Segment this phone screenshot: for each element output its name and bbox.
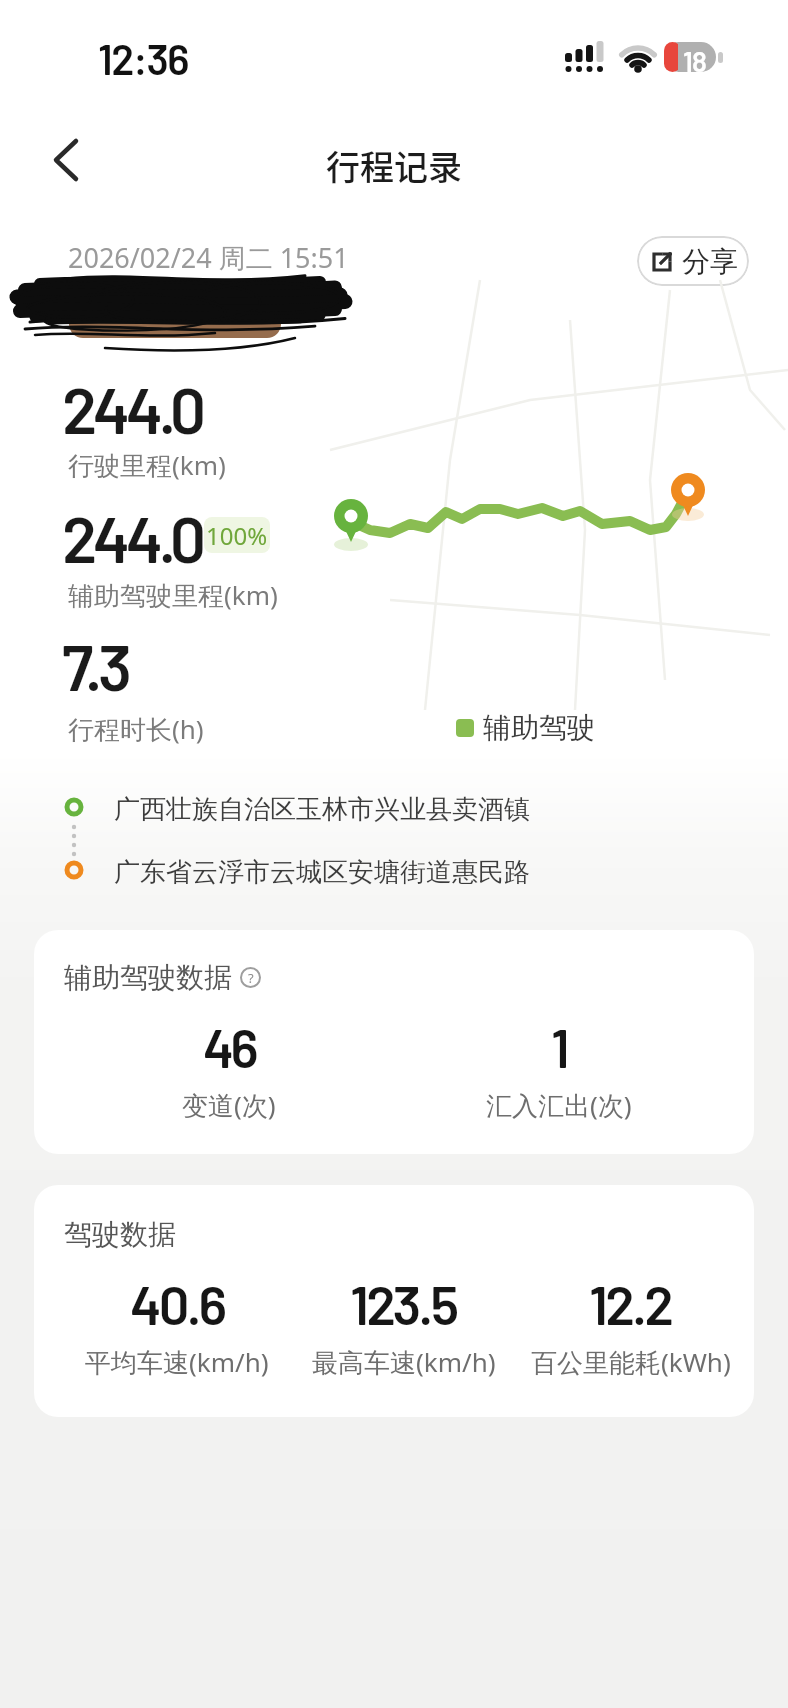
staticText: 40.6 — [130, 1271, 225, 1336]
staticText: 244.0 — [62, 499, 202, 576]
button[interactable] — [40, 134, 92, 186]
staticText: 行驶里程(km) — [68, 447, 226, 483]
staticText: 100% — [206, 519, 268, 552]
staticText: 1 — [551, 1015, 567, 1079]
staticText: 7.3 — [62, 627, 128, 704]
staticText: 分享 — [682, 244, 738, 279]
staticText: 辅助驾驶数据 — [64, 960, 232, 995]
staticText: 最高车速(km/h) — [312, 1344, 496, 1380]
staticText: 46 — [203, 1015, 256, 1079]
button[interactable]: 辅助驾驶数据 — [34, 930, 754, 1154]
staticText: 12:36 — [98, 33, 188, 83]
staticText: 244.0 — [62, 370, 202, 447]
button[interactable]: 分享 — [637, 236, 749, 286]
staticText: 2026/02/24 周二 15:51 — [68, 239, 349, 276]
button[interactable]: ? — [240, 967, 261, 988]
staticText: 行程时长(h) — [68, 711, 204, 747]
button[interactable]: 驾驶数据 — [34, 1185, 754, 1417]
staticText: 辅助驾驶里程(km) — [68, 577, 278, 613]
staticText: 驾驶数据 — [64, 1217, 176, 1252]
staticText: 百公里能耗(kWh) — [531, 1344, 731, 1380]
staticText: 12.2 — [589, 1271, 672, 1336]
staticText: 变道(次) — [182, 1087, 276, 1123]
staticText: 辅助驾驶 — [483, 710, 595, 745]
staticText: 汇入汇出(次) — [486, 1087, 632, 1123]
staticText: 平均车速(km/h) — [85, 1344, 269, 1380]
staticText: 广西壮族自治区玉林市兴业县卖酒镇 — [114, 793, 530, 826]
staticText: 行程记录 — [326, 141, 462, 190]
staticText: 18 — [683, 44, 706, 78]
staticText: 广东省云浮市云城区安塘街道惠民路 — [114, 856, 530, 889]
staticText: 123.5 — [350, 1271, 457, 1336]
staticText: ? — [248, 969, 254, 987]
